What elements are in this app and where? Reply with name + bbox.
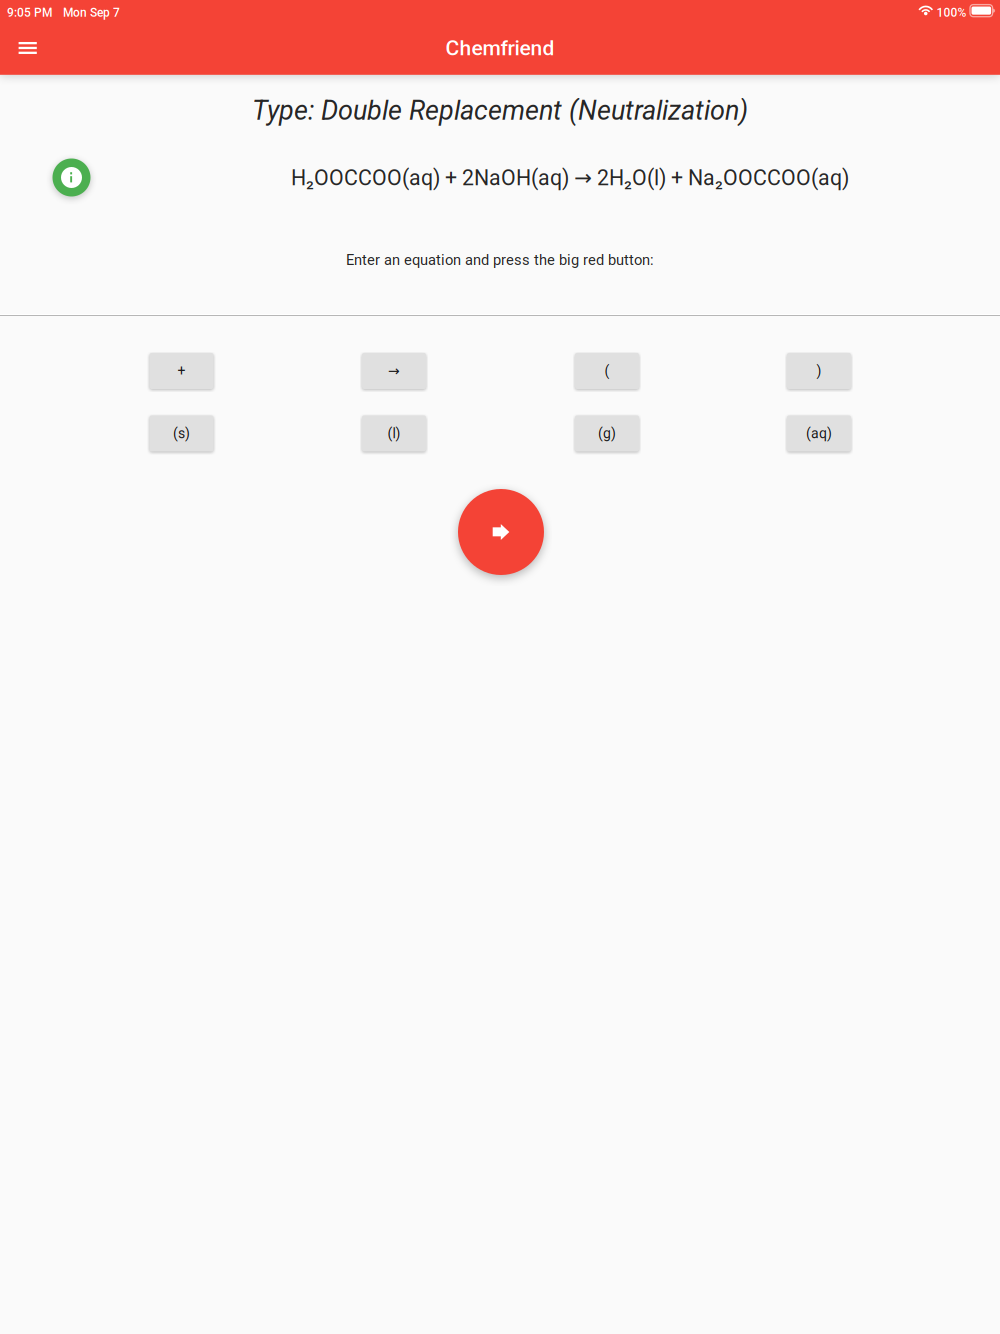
staticText: H₂OOCCOO(aq) + 2NaOH(aq) → 2H₂O(l) + Na₂…	[291, 165, 849, 190]
staticText: )	[816, 363, 821, 379]
button[interactable]: )	[787, 353, 851, 389]
staticText: Enter an equation and press the big red …	[346, 251, 654, 269]
staticText: +	[177, 363, 185, 379]
staticText: (g)	[598, 425, 616, 442]
button[interactable]: (	[575, 353, 639, 389]
staticText: (s)	[173, 425, 190, 442]
button[interactable]: (l)	[362, 415, 426, 451]
button[interactable]: Menu	[5, 25, 51, 71]
staticText: Type: Double Replacement (Neutralization…	[252, 95, 748, 126]
staticText: 9:05 PM	[7, 6, 52, 20]
staticText: →	[388, 363, 400, 379]
staticText: (l)	[387, 425, 400, 442]
staticText: Mon Sep 7	[63, 6, 120, 20]
button[interactable]: +	[149, 353, 213, 389]
staticText: (aq)	[806, 425, 832, 442]
button[interactable]: Balance equation	[458, 489, 544, 575]
button[interactable]: →	[362, 353, 426, 389]
button[interactable]: Information	[52, 158, 90, 196]
staticText: (	[604, 363, 609, 379]
button[interactable]: (s)	[149, 415, 213, 451]
button[interactable]: (g)	[575, 415, 639, 451]
staticText: 100%	[937, 6, 967, 20]
staticText: Chemfriend	[445, 36, 554, 60]
button[interactable]: (aq)	[787, 415, 851, 451]
